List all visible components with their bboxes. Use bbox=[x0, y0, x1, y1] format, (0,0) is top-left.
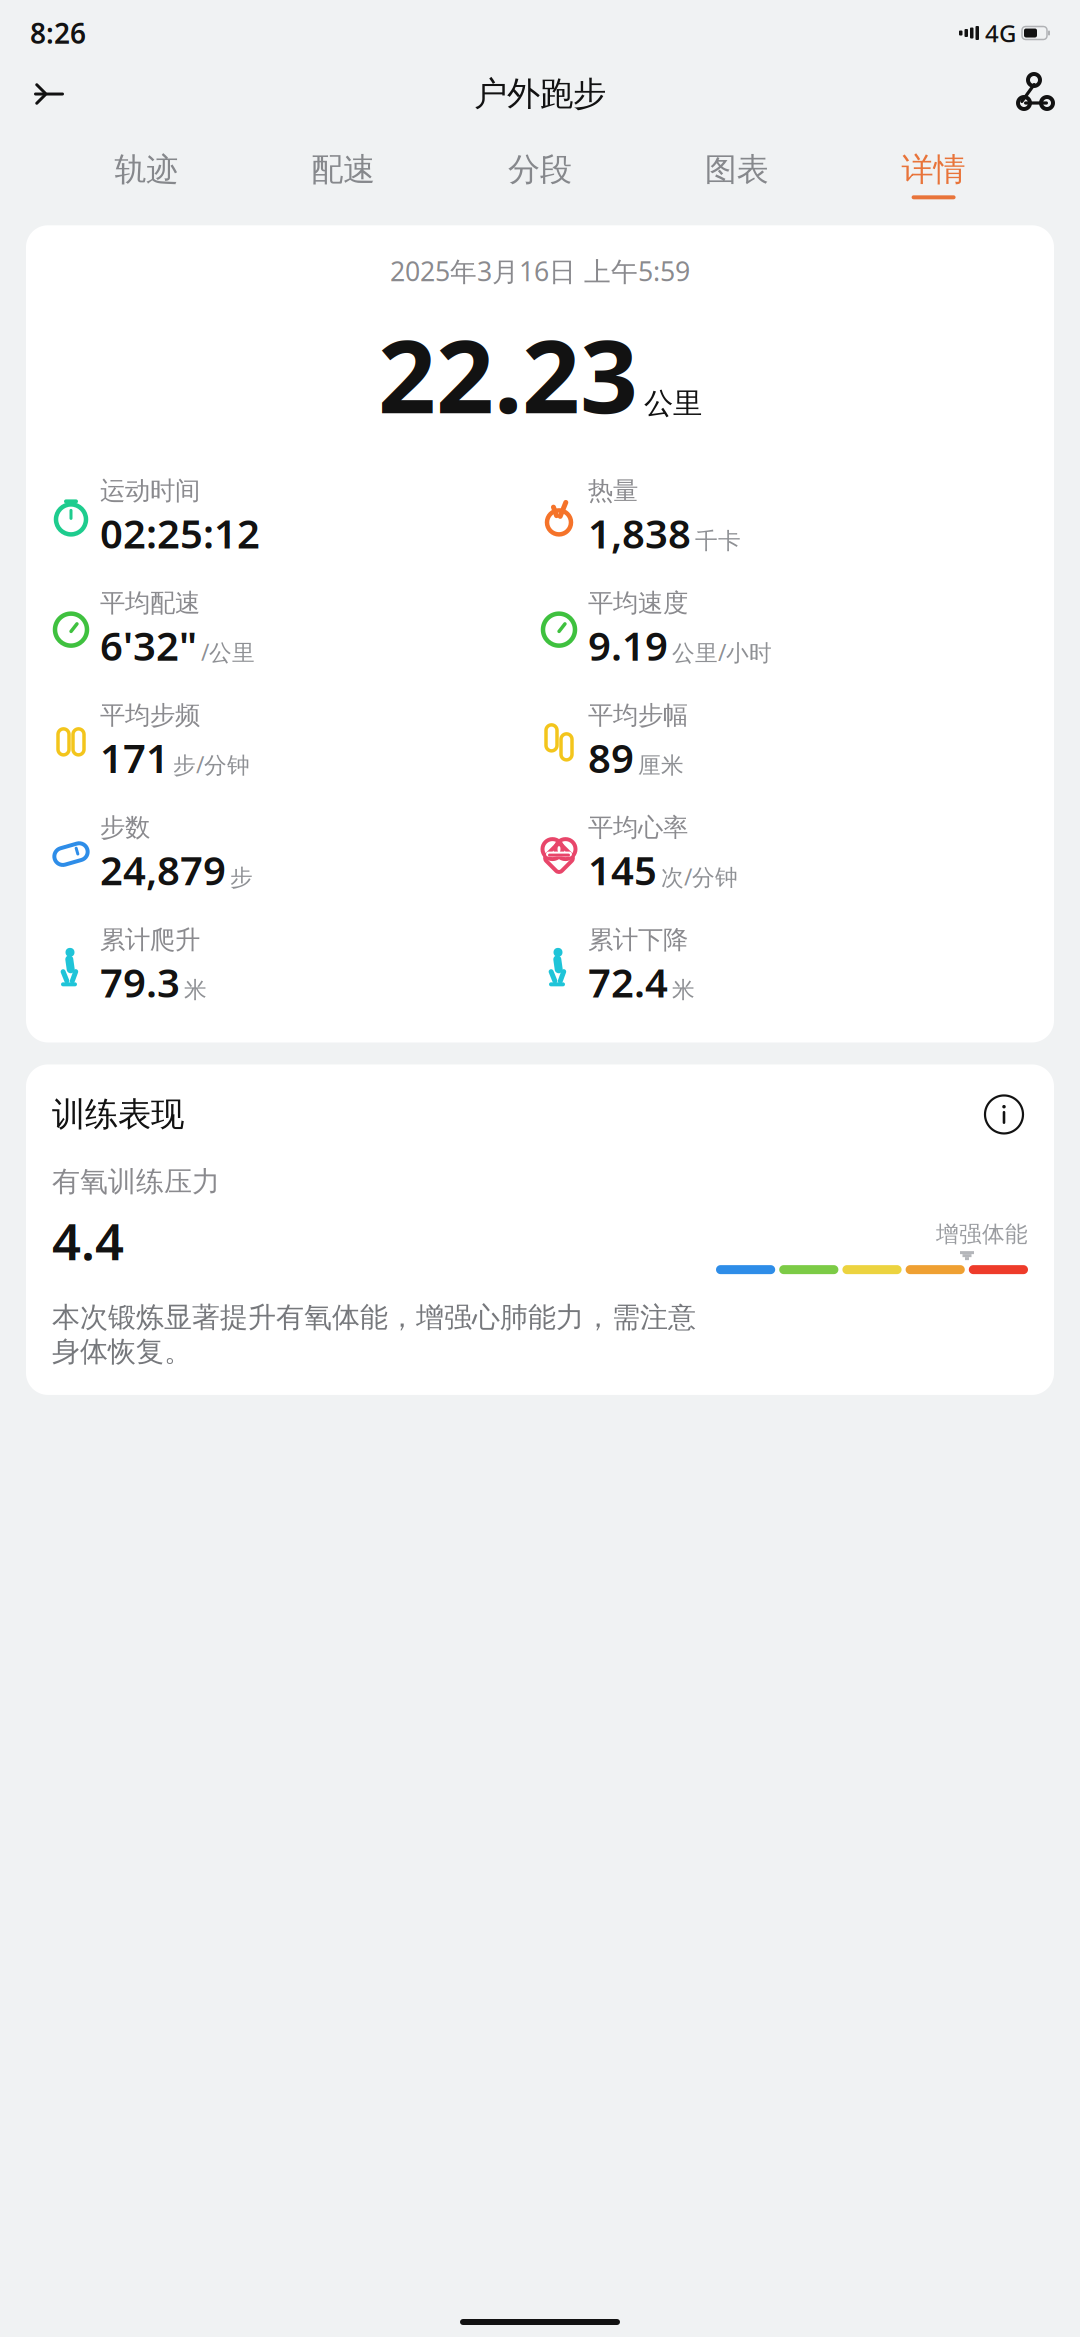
staticText: 8:26 bbox=[30, 14, 86, 52]
staticText: 平均配速 bbox=[100, 587, 200, 619]
staticText: 步数 bbox=[100, 812, 150, 843]
staticText: 24,879 bbox=[100, 843, 226, 896]
staticText: 步 bbox=[230, 864, 253, 891]
staticText: 运动时间 bbox=[100, 475, 200, 506]
staticText: 2025年3月16日 上午5:59 bbox=[390, 253, 690, 289]
staticText: 公里 bbox=[644, 385, 702, 421]
staticText: 累计下降 bbox=[588, 924, 688, 955]
staticText: 22.23 bbox=[378, 307, 638, 441]
button[interactable]: 分享 bbox=[1004, 67, 1058, 121]
staticText: 厘米 bbox=[638, 751, 684, 779]
button[interactable]: 图表 bbox=[638, 146, 835, 203]
staticText: 轨迹 bbox=[114, 150, 178, 189]
staticText: 分段 bbox=[508, 150, 572, 189]
staticText: 79.3 bbox=[100, 955, 180, 1008]
staticText: 增强体能 bbox=[936, 1220, 1028, 1248]
staticText: 千卡 bbox=[695, 527, 741, 555]
button[interactable]: 分段 bbox=[442, 146, 638, 203]
staticText: 户外跑步 bbox=[474, 73, 606, 114]
staticText: 145 bbox=[588, 843, 657, 896]
button[interactable]: 返回 bbox=[22, 67, 76, 121]
button[interactable]: 轨迹 bbox=[48, 146, 245, 203]
staticText: 配速 bbox=[311, 150, 375, 189]
staticText: 171 bbox=[100, 731, 169, 784]
staticText: 平均步幅 bbox=[588, 700, 688, 731]
staticText: 米 bbox=[672, 976, 695, 1004]
staticText: 米 bbox=[184, 976, 207, 1004]
staticText: /公里 bbox=[201, 637, 255, 667]
staticText: 6'32" bbox=[100, 619, 197, 672]
staticText: 步/分钟 bbox=[173, 749, 250, 779]
staticText: 公里/小时 bbox=[672, 637, 772, 667]
staticText: 本次锻炼显著提升有氧体能，增强心肺能力，需注意 身体恢复。 bbox=[52, 1300, 696, 1369]
staticText: 累计爬升 bbox=[100, 924, 200, 955]
button[interactable]: 说明 bbox=[980, 1090, 1028, 1138]
staticText: 次/分钟 bbox=[661, 862, 738, 892]
button[interactable]: 配速 bbox=[245, 146, 442, 203]
staticText: 02:25:12 bbox=[100, 506, 260, 559]
staticText: 热量 bbox=[588, 475, 638, 506]
staticText: 89 bbox=[588, 731, 634, 784]
staticText: 平均速度 bbox=[588, 587, 688, 619]
staticText: 1,838 bbox=[588, 506, 691, 559]
staticText: 9.19 bbox=[588, 619, 668, 672]
staticText: 4G bbox=[985, 17, 1016, 49]
staticText: 4.4 bbox=[52, 1207, 124, 1274]
staticText: 详情 bbox=[902, 150, 966, 189]
staticText: 平均步频 bbox=[100, 700, 200, 731]
staticText: 平均心率 bbox=[588, 812, 688, 843]
staticText: 图表 bbox=[705, 150, 769, 189]
button[interactable]: 详情 bbox=[835, 146, 1032, 203]
staticText: 72.4 bbox=[588, 955, 668, 1008]
staticText: 有氧训练压力 bbox=[52, 1164, 220, 1199]
staticText: 训练表现 bbox=[52, 1094, 184, 1135]
